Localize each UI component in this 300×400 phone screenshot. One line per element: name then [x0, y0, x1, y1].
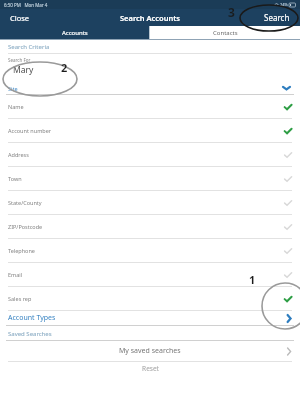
button[interactable]: Account number	[0, 119, 300, 142]
button[interactable]: Contacts	[150, 26, 300, 39]
staticText: Close	[10, 13, 30, 23]
button[interactable]: Address	[0, 143, 300, 166]
staticText: State/County	[8, 199, 42, 206]
staticText: Email	[8, 271, 23, 278]
staticText: 3	[228, 4, 235, 20]
button[interactable]: Telephone	[0, 239, 300, 262]
staticText: My saved searches	[119, 346, 181, 356]
staticText: Search For	[8, 57, 31, 63]
button[interactable]: ZIP/Postcode	[0, 215, 300, 238]
staticText: Accounts	[62, 29, 88, 37]
staticText: Name	[8, 103, 24, 110]
staticText: 6:50 PM Mon Mar 4	[4, 2, 48, 8]
button[interactable]: Search	[254, 9, 300, 26]
staticText: Reset	[142, 364, 159, 373]
button[interactable]: Account Types	[0, 311, 300, 325]
button[interactable]: Accounts	[0, 26, 149, 39]
staticText: Account Types	[8, 313, 56, 323]
staticText: Site	[8, 85, 18, 92]
button[interactable]: My saved searches	[0, 341, 300, 361]
staticText: Mary	[13, 64, 34, 76]
staticText: Telephone	[8, 247, 35, 254]
staticText: Search Accounts	[120, 13, 181, 23]
button[interactable]: Close	[0, 10, 40, 26]
button[interactable]: Site	[0, 82, 300, 94]
staticText: Contacts	[213, 29, 238, 37]
button[interactable]: Name	[0, 95, 300, 118]
staticText: Sales rep	[8, 295, 32, 302]
button[interactable]: Reset	[0, 362, 300, 376]
button[interactable]: Email	[0, 263, 300, 286]
staticText: Account number	[8, 127, 52, 134]
button[interactable]: Town	[0, 167, 300, 190]
staticText: ZIP/Postcode	[8, 223, 43, 230]
staticText: Saved Searches	[8, 330, 52, 338]
staticText: Town	[8, 175, 22, 182]
staticText: Search	[264, 12, 290, 23]
staticText: 24%	[280, 2, 288, 7]
button[interactable]: Search For	[0, 54, 300, 82]
staticText: 2	[61, 60, 68, 75]
staticText: Address	[8, 151, 29, 158]
button[interactable]: State/County	[0, 191, 300, 214]
staticText: 1	[249, 272, 256, 287]
staticText: Search Criteria	[8, 43, 50, 51]
button[interactable]: Sales rep	[0, 287, 300, 310]
